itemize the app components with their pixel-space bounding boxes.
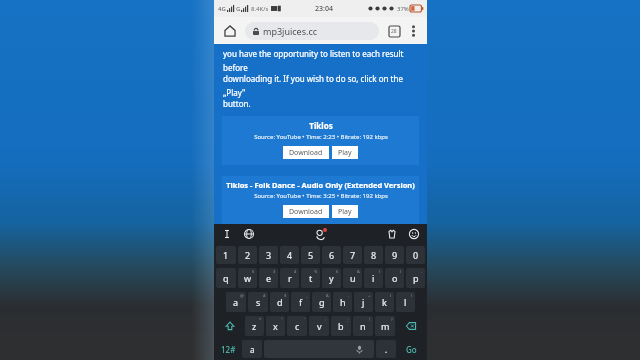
button[interactable]: - [406,268,425,288]
staticText: Play [338,207,352,217]
button[interactable]: Tiklos - Folk Dance - Audio Only (Extend… [222,176,419,224]
staticText: y [329,272,334,284]
button[interactable]: More options [404,22,422,40]
staticText: 28 [391,28,397,35]
staticText: 2 [245,249,251,261]
button[interactable]: " [266,316,285,336]
button[interactable]: 3 [259,268,278,288]
button[interactable]: 6 [322,246,341,264]
button[interactable]: ( [375,292,394,312]
button[interactable]: ; [331,316,351,336]
staticText: r [288,272,292,284]
button[interactable]: $ [270,292,289,312]
staticText: 3 [273,269,276,274]
button[interactable]: * [245,316,264,336]
button[interactable]: q [216,268,236,288]
button[interactable]: ' [287,316,307,336]
staticText: . [385,344,388,355]
staticText: a [250,344,255,355]
staticText: $ [284,293,287,298]
button[interactable]: % [301,268,320,288]
button[interactable]: 6 [322,268,341,288]
button[interactable]: ! [353,316,373,336]
staticText: 6 [336,269,339,274]
button[interactable]: Tabs [384,21,404,41]
staticText: e [266,272,272,284]
staticText: s [256,296,261,308]
button[interactable]: & [343,268,362,288]
button[interactable]: 12# [216,340,241,358]
button[interactable]: Tiklos [222,116,419,165]
button[interactable]: Play [332,146,358,159]
staticText: % [314,269,318,274]
staticText: G [236,5,241,13]
button[interactable]: Emoji [407,227,421,241]
staticText: c [295,320,300,332]
button[interactable]: # [248,292,268,312]
button[interactable]: 4 [280,268,299,288]
button[interactable]: + [354,292,373,312]
staticText: 5 [308,249,314,261]
button[interactable]: 0 [406,246,425,264]
staticText: x [273,320,278,332]
button[interactable]: : [309,316,329,336]
staticText: b [338,320,344,332]
staticText: - [348,293,350,298]
staticText: n [360,320,366,332]
staticText: & [326,293,329,298]
staticText: a [233,296,239,308]
button[interactable]: 8 [364,246,383,264]
button[interactable]: Language [242,227,256,241]
staticText: z [252,320,257,332]
staticText: Download [289,148,323,158]
staticText: 1 [223,249,229,261]
button[interactable]: 4 [280,246,299,264]
button[interactable]: _ [291,292,310,312]
button[interactable]: 5 [238,268,257,288]
staticText: # [263,293,266,298]
staticText: v [317,320,322,332]
button[interactable]: Space [264,340,374,358]
staticText: button. [223,98,251,109]
staticText: Tiklos [309,120,333,131]
staticText: p [413,272,419,284]
staticText: j [362,296,365,308]
button[interactable]: . [376,340,396,358]
button[interactable]: 2 [238,246,257,264]
button[interactable]: Backspace [397,316,425,336]
staticText: _ [306,293,308,298]
button[interactable]: a [242,340,262,358]
staticText: " [281,317,283,322]
button[interactable]: 3 [259,246,278,264]
button[interactable]: Play [332,205,358,218]
button[interactable]: 1 [216,246,236,264]
button[interactable]: Home [219,20,241,42]
button[interactable]: Download [283,146,329,159]
staticText: g [319,296,325,308]
button[interactable]: Download [283,205,329,218]
staticText: d [277,296,283,308]
button[interactable]: Go [397,340,425,358]
button[interactable]: ) [385,268,404,288]
button[interactable]: ( [364,268,383,288]
button[interactable]: 5 [301,246,320,264]
button[interactable]: ) [396,292,415,312]
button[interactable]: Text editing [220,227,234,241]
staticText: 6 [329,249,335,261]
staticText: 0 [413,249,419,261]
staticText: 3 [266,249,272,261]
button[interactable]: 7 [343,246,362,264]
button[interactable]: ? [375,316,395,336]
button[interactable]: Themes [385,227,399,241]
staticText: h [340,296,346,308]
staticText: ) [411,293,413,298]
button[interactable]: Shift [216,316,243,336]
staticText: 8.4K/s [251,5,269,13]
staticText: - [421,269,423,274]
button[interactable]: 9 [385,246,404,264]
staticText: ' [304,317,305,322]
button[interactable]: @ [226,292,246,312]
button[interactable]: & [312,292,331,312]
button[interactable]: mp3juices.cc [245,22,379,40]
button[interactable]: - [333,292,352,312]
